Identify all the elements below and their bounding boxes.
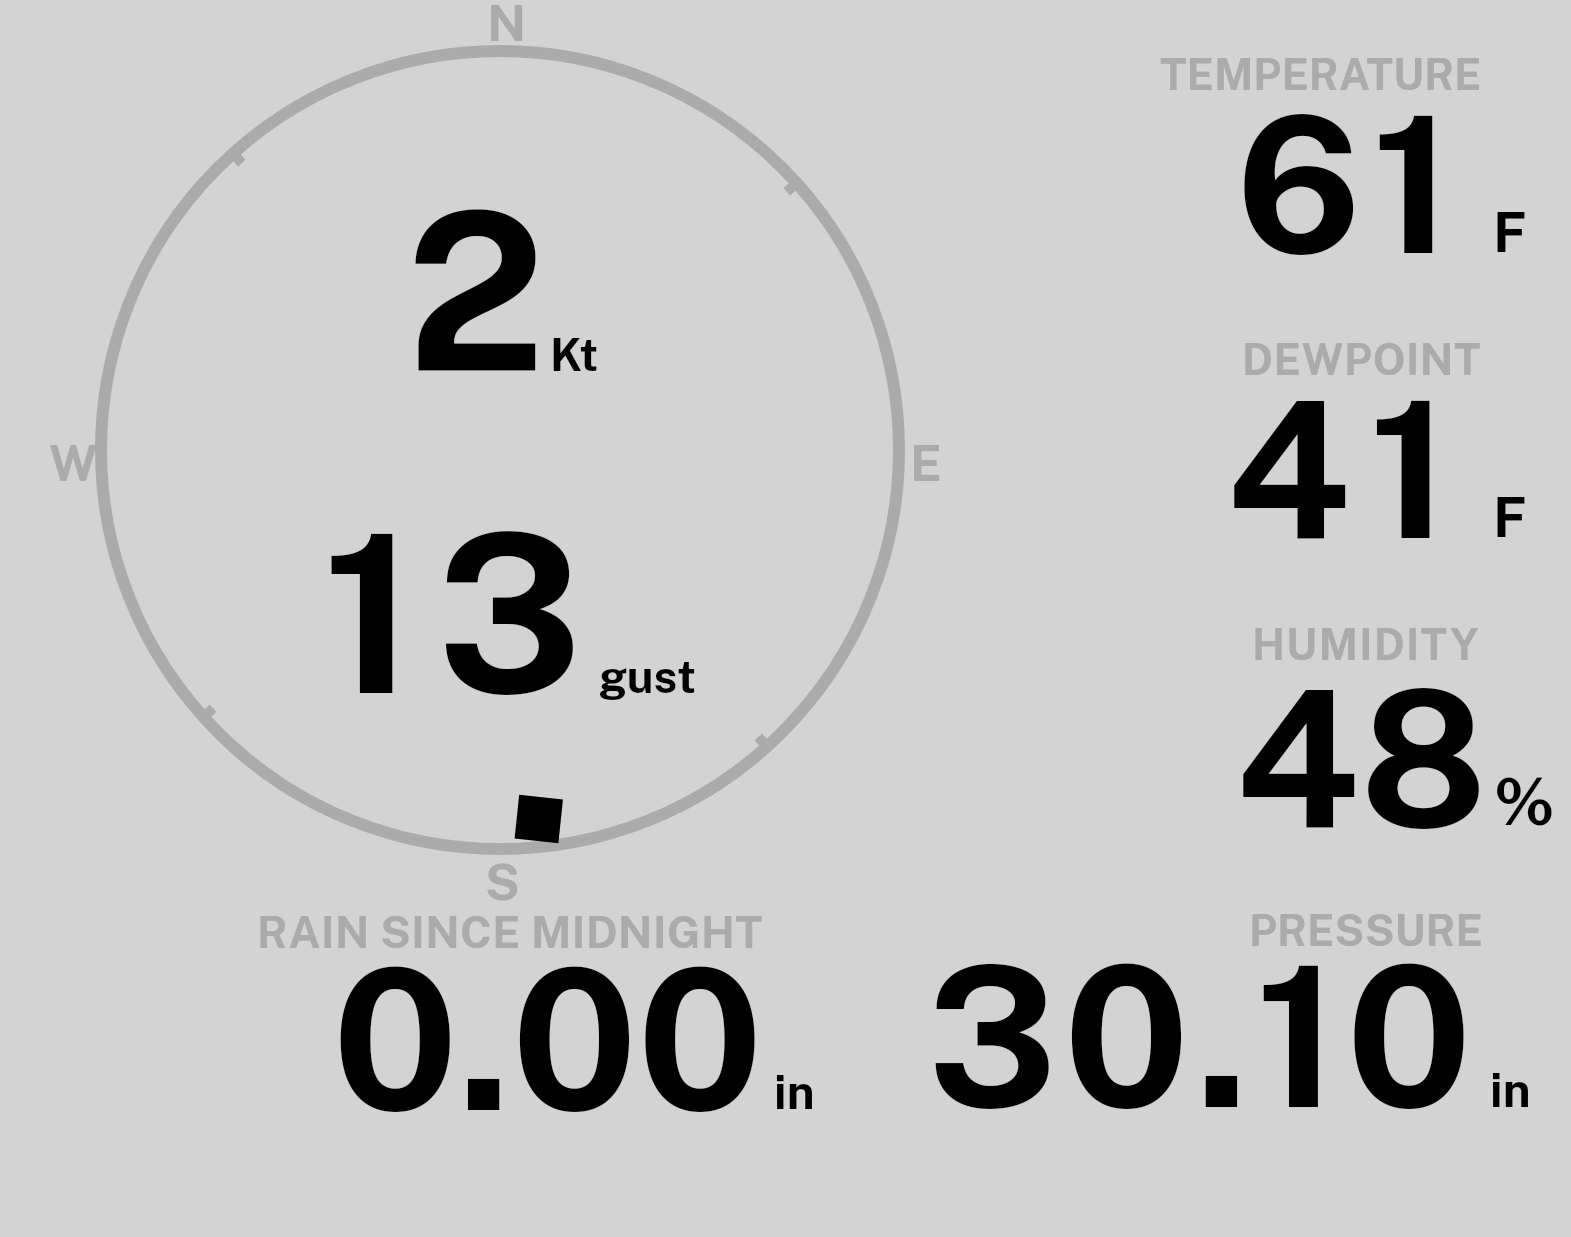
staticText: W <box>49 433 98 492</box>
button[interactable]: Pressure 30.10 inches of mercury <box>920 900 1530 1125</box>
staticText: S <box>485 852 520 911</box>
staticText: RAIN SINCE MIDNIGHT <box>257 906 763 958</box>
button[interactable]: Dewpoint 41 degrees Fahrenheit <box>1150 330 1550 555</box>
staticText: in <box>774 1064 815 1119</box>
button[interactable]: Wind compass, 2 knots gusting 13, from t… <box>96 46 904 854</box>
button[interactable]: Humidity 48 percent <box>1150 615 1550 840</box>
button[interactable]: Rain since midnight 0.00 inches <box>250 900 820 1125</box>
staticText: in <box>1490 1062 1531 1117</box>
staticText: F <box>1493 200 1527 265</box>
staticText: 2 <box>406 162 546 421</box>
button[interactable]: Temperature 61 degrees Fahrenheit <box>1150 45 1550 270</box>
staticText: DEWPOINT <box>1242 334 1482 385</box>
staticText: F <box>1493 485 1527 550</box>
staticText: % <box>1494 763 1556 839</box>
staticText: 30.10 <box>927 921 1479 1151</box>
staticText: 0.00 <box>332 924 764 1154</box>
staticText: PRESSURE <box>1249 905 1483 956</box>
staticText: 13 <box>322 484 603 743</box>
staticText: 61 <box>1236 72 1463 295</box>
staticText: 41 <box>1226 357 1468 580</box>
staticText: Kt <box>550 328 599 381</box>
staticText: 48 <box>1235 646 1488 869</box>
staticText: E <box>910 433 942 492</box>
staticText: N <box>487 0 527 52</box>
staticText: gust <box>599 650 696 703</box>
staticText: HUMIDITY <box>1252 619 1480 670</box>
staticText: TEMPERATURE <box>1160 49 1482 100</box>
